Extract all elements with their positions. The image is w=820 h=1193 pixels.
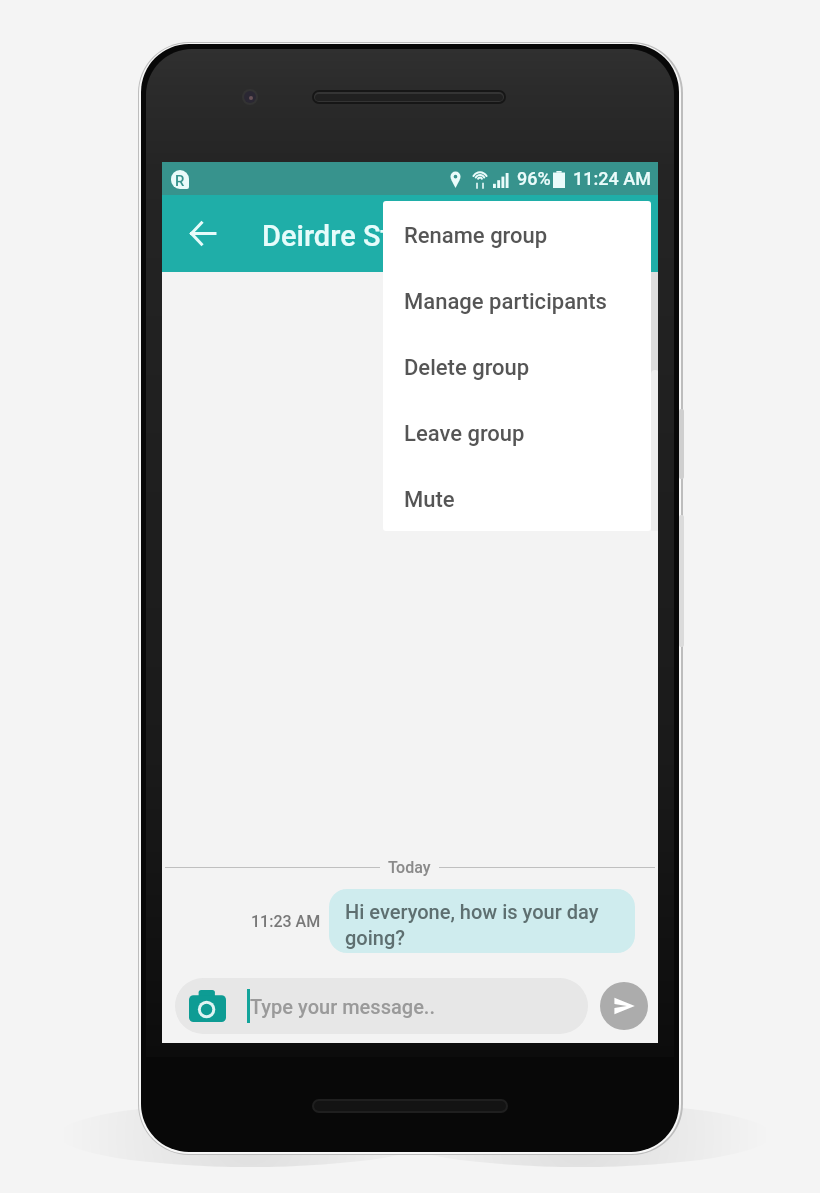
staticText: 11:24 AM <box>573 168 651 189</box>
staticText: Hi everyone, how is your day going? <box>345 900 599 949</box>
button[interactable]: Leave group <box>383 399 651 465</box>
button[interactable]: Send <box>600 982 648 1030</box>
button[interactable]: Back <box>178 209 226 257</box>
staticText: Today <box>388 858 431 877</box>
staticText: Manage participants <box>404 289 607 315</box>
button[interactable]: Hi everyone, how is your day going? <box>329 889 635 953</box>
button[interactable]: Manage participants <box>383 267 651 333</box>
button[interactable]: Delete group <box>383 333 651 399</box>
staticText: Rename group <box>404 223 548 249</box>
button[interactable]: Rename group <box>383 201 651 267</box>
staticText: Leave group <box>404 421 525 447</box>
staticText: 96% <box>517 168 551 189</box>
staticText: Mute <box>404 487 455 513</box>
button[interactable]: Type your message.. <box>175 978 588 1034</box>
button[interactable]: Mute <box>383 465 651 531</box>
staticText: Type your message.. <box>250 995 436 1018</box>
staticText: R <box>175 172 185 190</box>
staticText: Delete group <box>404 355 530 381</box>
staticText: Deirdre Stewart <box>262 219 464 253</box>
staticText: 11:23 AM <box>251 912 321 931</box>
